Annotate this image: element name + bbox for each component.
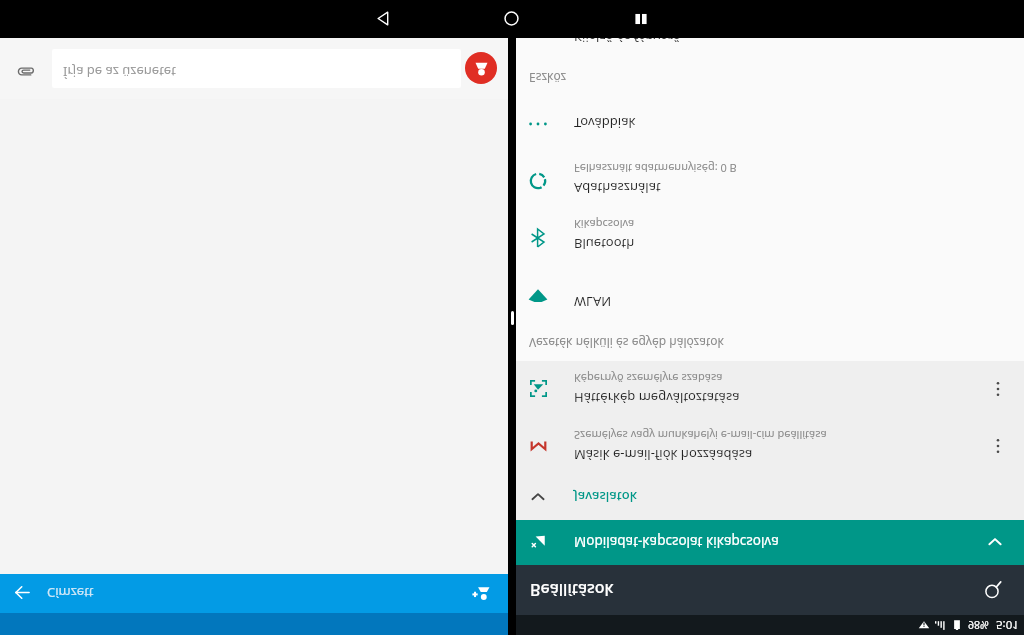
staticText: Írja be az üzenetet [63, 63, 176, 81]
button[interactable]: Másik e-mail-fiók hozzáadása [516, 418, 1024, 475]
staticText: Címzett [47, 584, 94, 602]
button[interactable]: Collapse [978, 525, 1012, 559]
staticText: Javaslatok [574, 488, 637, 506]
button[interactable]: Adathasználat [516, 153, 1024, 210]
button[interactable]: More options [978, 369, 1018, 409]
staticText: Kijelző és fényerő [574, 38, 681, 46]
button[interactable]: More options [978, 426, 1018, 466]
staticText: Beállítások [530, 579, 614, 601]
staticText: Háttérkép megváltoztatása [574, 389, 740, 407]
button[interactable]: Kijelző és fényerő [516, 38, 1024, 46]
staticText: Eszköz [529, 70, 567, 86]
button[interactable]: Mobiladat-kapcsolat kikapcsolva [516, 520, 1024, 565]
staticText: Adathasználat [574, 179, 661, 197]
button[interactable]: Javaslatok [516, 475, 1024, 520]
button[interactable]: Írja be az üzenetet [52, 49, 461, 88]
staticText: Vezeték nélküli és egyéb hálózatok [529, 335, 724, 351]
staticText: Másik e-mail-fiók hozzáadása [574, 446, 753, 464]
staticText: Felhasznált adatmennyiség: 0 B [574, 161, 737, 176]
staticText: Személyes vagy munkahelyi e-mail-cím beá… [574, 428, 827, 443]
staticText: 98% [968, 618, 989, 632]
button[interactable]: Továbbiak [516, 96, 1024, 153]
staticText: Továbbiak [574, 114, 636, 132]
staticText: Képernyő személyre szabása [574, 371, 723, 386]
staticText: WLAN [574, 293, 612, 311]
button[interactable]: Háttérkép megváltoztatása [516, 361, 1024, 418]
button[interactable]: Attach file [8, 56, 42, 90]
button[interactable]: Recent apps [616, 0, 666, 38]
staticText: Kikapcsolva [574, 217, 635, 232]
staticText: Bluetooth [574, 235, 635, 253]
button[interactable]: Home [486, 0, 536, 38]
staticText: 5:01 [996, 617, 1019, 633]
button[interactable]: Bluetooth [516, 210, 1024, 267]
button[interactable]: Back [5, 576, 39, 610]
button[interactable]: Add contact [462, 574, 500, 612]
button[interactable]: Search [972, 569, 1014, 611]
staticText: Mobiladat-kapcsolat kikapcsolva [574, 533, 779, 551]
button[interactable]: Send message error [465, 52, 497, 84]
button[interactable]: Back [358, 0, 408, 38]
button[interactable]: WLAN [516, 267, 1024, 325]
